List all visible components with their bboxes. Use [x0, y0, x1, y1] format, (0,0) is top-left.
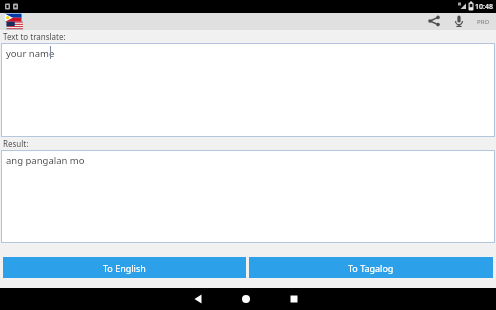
staticText: Result:: [3, 138, 29, 149]
staticText: To English: [103, 262, 146, 274]
staticText: ang pangalan mo: [6, 154, 85, 167]
staticText: your name: [6, 47, 55, 60]
staticText: Text to translate:: [3, 31, 66, 42]
staticText: PRO: [477, 18, 490, 26]
staticText: 10:48: [475, 2, 493, 12]
staticText: To Tagalog: [348, 262, 394, 274]
